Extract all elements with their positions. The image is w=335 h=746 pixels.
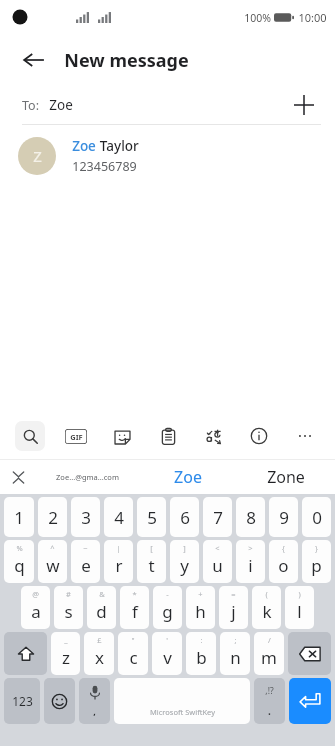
- staticText: Zoe: [49, 96, 73, 114]
- staticText: u: [212, 554, 223, 577]
- button[interactable]: >: [236, 540, 265, 583]
- button[interactable]: :: [186, 632, 216, 675]
- staticText: i: [248, 554, 253, 577]
- staticText: -: [166, 589, 169, 599]
- staticText: q: [14, 554, 25, 577]
- button[interactable]: +: [186, 586, 215, 629]
- button[interactable]: Back: [18, 44, 50, 76]
- button[interactable]: 4: [104, 497, 133, 537]
- button[interactable]: #: [54, 586, 83, 629]
- button[interactable]: 6: [170, 497, 199, 537]
- button[interactable]: _: [51, 632, 80, 675]
- button[interactable]: Translate: [195, 418, 231, 454]
- staticText: 7: [213, 506, 223, 529]
- button[interactable]: Shift: [4, 632, 47, 675]
- button[interactable]: <: [203, 540, 232, 583]
- button[interactable]: Send: [289, 678, 331, 724]
- staticText: <: [215, 543, 220, 553]
- staticText: ,: [93, 705, 96, 717]
- staticText: t: [148, 554, 155, 577]
- button[interactable]: 2: [38, 497, 67, 537]
- staticText: To:: [22, 97, 39, 114]
- button[interactable]: £: [84, 632, 114, 675]
- staticText: z: [62, 646, 70, 669]
- staticText: w: [46, 554, 60, 577]
- button[interactable]: Info: [241, 418, 277, 454]
- staticText: ~: [83, 543, 88, 553]
- button[interactable]: Numbers: [4, 678, 40, 724]
- staticText: GIF: [70, 432, 83, 442]
- button[interactable]: *: [120, 586, 149, 629]
- button[interactable]: 5: [137, 497, 166, 537]
- staticText: >: [248, 543, 253, 553]
- staticText: /: [268, 635, 271, 645]
- button[interactable]: 7: [203, 497, 232, 537]
- button[interactable]: Stickers: [104, 418, 140, 454]
- button[interactable]: Z: [0, 125, 335, 187]
- button[interactable]: ': [152, 632, 182, 675]
- button[interactable]: (: [252, 586, 281, 629]
- button[interactable]: %: [4, 540, 34, 583]
- staticText: @: [32, 589, 39, 599]
- staticText: (: [265, 589, 268, 599]
- staticText: &: [99, 589, 105, 599]
- button[interactable]: Clipboard: [150, 418, 186, 454]
- button[interactable]: |: [104, 540, 133, 583]
- staticText: 5: [147, 506, 157, 529]
- button[interactable]: Punctuation: [254, 678, 285, 724]
- button[interactable]: /: [254, 632, 284, 675]
- staticText: Zoe: [72, 137, 96, 155]
- staticText: a: [31, 600, 41, 623]
- button[interactable]: 1: [4, 497, 34, 537]
- staticText: :: [200, 635, 203, 645]
- staticText: ': [166, 635, 168, 645]
- staticText: 123456789: [72, 158, 137, 175]
- button[interactable]: GIF: [58, 418, 94, 454]
- staticText: x: [95, 646, 104, 669]
- button[interactable]: ~: [71, 540, 100, 583]
- button[interactable]: 8: [236, 497, 265, 537]
- button[interactable]: ]: [170, 540, 199, 583]
- button[interactable]: [: [137, 540, 166, 583]
- staticText: Zoe: [174, 466, 202, 488]
- staticText: p: [311, 554, 322, 577]
- button[interactable]: @: [21, 586, 50, 629]
- button[interactable]: ": [118, 632, 148, 675]
- button[interactable]: {: [269, 540, 298, 583]
- button[interactable]: Search: [12, 418, 48, 454]
- button[interactable]: Collapse suggestions: [0, 460, 36, 494]
- staticText: b: [196, 646, 207, 669]
- staticText: k: [262, 600, 272, 623]
- button[interactable]: More options: [287, 418, 323, 454]
- button[interactable]: Voice input: [79, 678, 110, 724]
- button[interactable]: Space: [114, 678, 250, 724]
- button[interactable]: 0: [302, 497, 331, 537]
- button[interactable]: ^: [38, 540, 67, 583]
- button[interactable]: Add recipient: [289, 90, 319, 120]
- button[interactable]: 9: [269, 497, 298, 537]
- button[interactable]: =: [219, 586, 248, 629]
- button[interactable]: Zoe...@gma...com: [36, 460, 139, 494]
- button[interactable]: -: [153, 586, 182, 629]
- staticText: g: [162, 600, 173, 623]
- staticText: £: [97, 635, 102, 645]
- button[interactable]: Zoe: [139, 460, 237, 494]
- staticText: .: [268, 704, 271, 718]
- staticText: m: [261, 646, 277, 669]
- button[interactable]: Zone: [237, 460, 335, 494]
- staticText: _: [64, 635, 68, 645]
- staticText: [: [150, 543, 153, 553]
- staticText: ": [131, 635, 135, 645]
- staticText: 2: [48, 506, 58, 529]
- button[interactable]: &: [87, 586, 116, 629]
- staticText: 6: [180, 506, 190, 529]
- button[interactable]: }: [302, 540, 331, 583]
- button[interactable]: Emoji: [44, 678, 75, 724]
- button[interactable]: ;: [220, 632, 250, 675]
- button[interactable]: 3: [71, 497, 100, 537]
- button[interactable]: ): [285, 586, 314, 629]
- button[interactable]: Backspace: [288, 632, 331, 675]
- staticText: y: [180, 554, 189, 577]
- staticText: 9: [279, 506, 289, 529]
- staticText: ]: [183, 543, 186, 553]
